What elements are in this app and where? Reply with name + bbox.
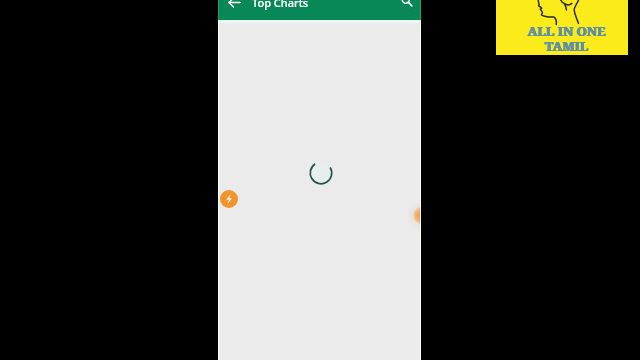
staticText: ALL IN ONE [527, 22, 605, 40]
staticText: TAMIL [545, 37, 589, 55]
button[interactable]: Back [223, 0, 245, 12]
staticText: ALL IN ONE [528, 22, 606, 40]
button[interactable]: Install [406, 203, 421, 229]
button[interactable]: Search [396, 0, 418, 11]
staticText: TAMIL [544, 37, 588, 55]
button[interactable]: Install [220, 190, 238, 208]
staticText: Top Charts [252, 0, 309, 10]
staticText: TAMIL [545, 37, 589, 55]
staticText: ALL IN ONE [528, 22, 606, 40]
